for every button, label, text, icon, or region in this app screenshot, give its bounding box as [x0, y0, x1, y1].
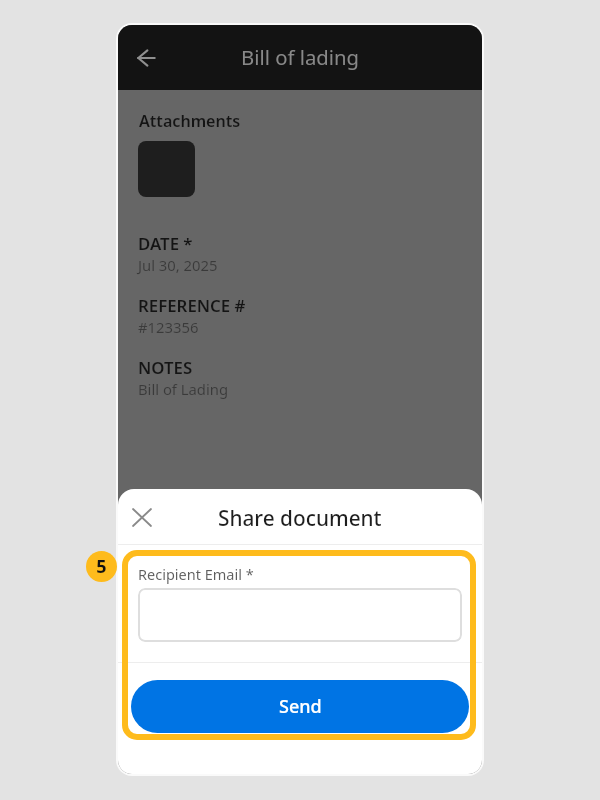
staticText: 5	[96, 554, 107, 579]
staticText: Share document	[218, 504, 382, 532]
staticText: Recipient Email *	[138, 564, 254, 584]
button[interactable]: Attachment thumbnail	[138, 141, 195, 197]
staticText: REFERENCE #	[138, 294, 246, 317]
staticText: Jul 30, 2025	[138, 255, 218, 275]
button[interactable]	[138, 588, 462, 642]
button[interactable]: Send	[131, 680, 469, 733]
staticText: Bill of Lading	[138, 379, 229, 399]
staticText: Send	[279, 694, 322, 719]
staticText: Bill of lading	[241, 43, 360, 71]
button[interactable]: Back	[122, 34, 170, 82]
button[interactable]: Close	[120, 495, 164, 539]
staticText: #123356	[138, 317, 199, 337]
staticText: Attachments	[139, 110, 241, 132]
staticText: NOTES	[138, 356, 193, 379]
staticText: DATE *	[138, 232, 193, 255]
